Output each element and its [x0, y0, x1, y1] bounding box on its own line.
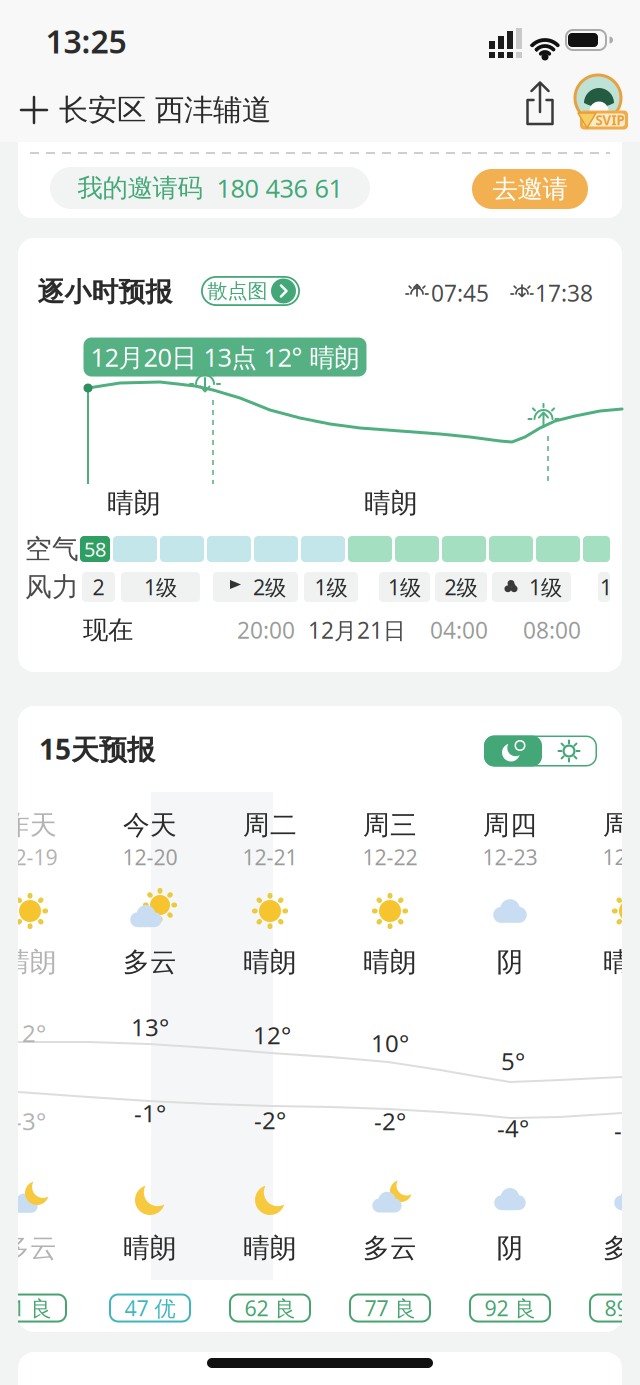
staticText: 多云: [603, 1232, 640, 1264]
staticText: 1级: [529, 573, 562, 601]
staticText: 12°: [253, 1019, 291, 1051]
staticText: -4°: [497, 1112, 529, 1144]
staticText: 12-20: [122, 843, 177, 871]
staticText: 2: [92, 573, 104, 601]
staticText: 长安区 西沣辅道: [59, 92, 271, 128]
staticText: 17:38: [535, 278, 593, 308]
button[interactable]: 散点图: [201, 276, 300, 306]
staticText: 晴朗: [243, 1232, 297, 1264]
staticText: 昨天: [3, 809, 57, 841]
staticText: 晴朗: [364, 487, 418, 519]
staticText: 91 良: [0, 1294, 51, 1322]
staticText: 20:00: [237, 615, 295, 645]
staticText: 12-19: [2, 843, 57, 871]
staticText: 62 良: [244, 1294, 295, 1322]
staticText: 阴: [496, 1232, 523, 1264]
staticText: -2°: [614, 1114, 640, 1146]
staticText: 1级: [144, 573, 177, 601]
staticText: 04:00: [430, 615, 488, 645]
staticText: 07:45: [431, 278, 489, 308]
staticText: 12-24: [602, 843, 640, 871]
staticText: 晴朗: [363, 946, 417, 978]
staticText: 多云: [123, 946, 177, 978]
staticText: 逐小时预报: [37, 276, 172, 308]
staticText: 晴朗: [123, 1232, 177, 1264]
button[interactable]: 去邀请: [472, 169, 588, 209]
staticText: 13:25: [45, 20, 126, 62]
staticText: 5°: [501, 1045, 525, 1077]
staticText: 现在: [83, 614, 133, 645]
staticText: 周三: [363, 809, 417, 841]
staticText: 77 良: [364, 1294, 415, 1322]
staticText: 周二: [243, 809, 297, 841]
staticText: 1: [600, 573, 612, 601]
staticText: 晴朗: [107, 487, 161, 519]
staticText: 周五: [603, 809, 640, 841]
staticText: 多云: [363, 1232, 417, 1264]
staticText: 10°: [371, 1027, 409, 1059]
staticText: 12-22: [362, 843, 417, 871]
staticText: 92 良: [484, 1294, 535, 1322]
button[interactable]: Profile: [570, 68, 630, 134]
staticText: 多云: [3, 1232, 57, 1264]
staticText: 周四: [483, 809, 537, 841]
staticText: 晴朗: [603, 946, 640, 978]
staticText: 47 优: [124, 1294, 175, 1322]
staticText: 89 良: [604, 1294, 640, 1322]
staticText: 58: [84, 536, 106, 562]
staticText: 我的邀请码: [77, 172, 202, 203]
staticText: 空气: [25, 533, 79, 565]
staticText: -2°: [374, 1105, 406, 1137]
staticText: 15天预报: [39, 730, 155, 768]
button[interactable]: Add city: [20, 96, 48, 124]
button[interactable]: 我的邀请码: [50, 167, 370, 209]
staticText: 散点图: [207, 279, 267, 303]
staticText: 2°: [22, 1017, 46, 1049]
staticText: 今天: [123, 809, 177, 841]
staticText: 去邀请: [492, 173, 567, 204]
staticText: 风力: [25, 571, 79, 603]
staticText: -1°: [134, 1097, 166, 1129]
staticText: 晴朗: [3, 946, 57, 978]
staticText: 180 436 61: [216, 171, 342, 205]
staticText: -2°: [254, 1104, 286, 1136]
staticText: 12-21: [242, 843, 297, 871]
staticText: 晴朗: [243, 946, 297, 978]
staticText: 阴: [496, 946, 523, 978]
staticText: -3°: [14, 1105, 46, 1137]
staticText: 1级: [314, 573, 347, 601]
staticText: 1级: [388, 573, 421, 601]
staticText: 12-23: [482, 843, 537, 871]
button[interactable]: Share: [524, 80, 554, 126]
staticText: 2级: [444, 573, 477, 601]
staticText: 13°: [131, 1011, 169, 1043]
button[interactable]: Day night toggle: [484, 735, 597, 766]
staticText: SVIP: [595, 111, 624, 129]
staticText: 2级: [253, 573, 286, 601]
staticText: 12月21日: [308, 615, 406, 645]
staticText: 08:00: [523, 615, 581, 645]
staticText: 12月20日 13点 12° 晴朗: [90, 340, 359, 374]
